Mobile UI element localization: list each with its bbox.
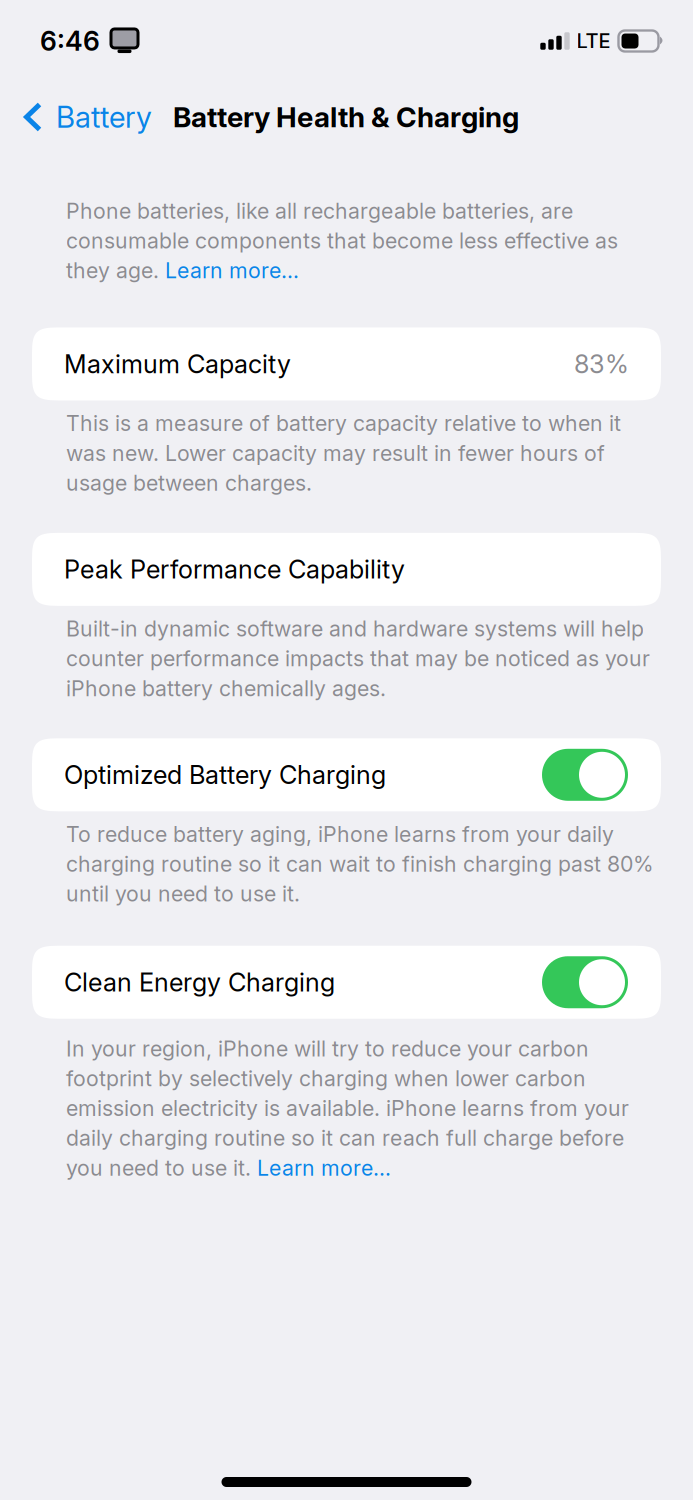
staticText: Peak Performance Capability [64,554,405,585]
staticText: Clean Energy Charging [64,967,335,998]
staticText: Optimized Battery Charging [64,759,386,790]
staticText: This is a measure of battery capacity re… [66,410,621,496]
staticText: 83% [574,349,629,379]
staticText: Battery [56,99,152,135]
staticText: In your region, iPhone will try to reduc… [66,1036,629,1181]
staticText: Battery Health & Charging [173,100,519,134]
button[interactable]: Battery [0,86,173,148]
staticText: Built-in dynamic software and hardware s… [66,616,650,701]
staticText: 6:46 [40,25,100,57]
staticText: Phone batteries, like all rechargeable b… [66,198,618,283]
button[interactable]: Maximum Capacity [32,327,661,400]
button[interactable]: Peak Performance Capability [32,533,661,606]
button[interactable]: Optimized Battery Charging [32,738,661,811]
staticText: Maximum Capacity [64,349,291,379]
staticText: LTE [576,29,610,53]
staticText: To reduce battery aging, iPhone learns f… [66,821,654,907]
button[interactable]: Clean Energy Charging [32,946,661,1019]
